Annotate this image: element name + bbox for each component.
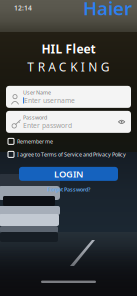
button[interactable]: Password (6, 111, 131, 133)
staticText: Forgot Password? (47, 186, 90, 193)
staticText: Haier (83, 0, 132, 20)
staticText: I agree to Terms of Service and Privacy … (17, 151, 126, 158)
staticText: LOGIN (54, 168, 83, 180)
button[interactable]: Forgot Password? (47, 186, 90, 193)
button[interactable]: I agree to Terms of Service and Privacy … (8, 151, 134, 158)
staticText: HIL Fleet (41, 41, 95, 57)
staticText: Password (23, 114, 47, 121)
button[interactable]: User Name (6, 86, 131, 108)
button[interactable]: LOGIN (19, 167, 118, 181)
staticText: Enter password (23, 121, 72, 130)
staticText: TRACKING (27, 59, 110, 75)
button[interactable]: Remember me (8, 138, 134, 145)
staticText: Remember me (17, 138, 53, 145)
staticText: 12:14 (14, 4, 32, 12)
staticText: User Name (23, 89, 51, 96)
staticText: Enter username (24, 96, 75, 105)
